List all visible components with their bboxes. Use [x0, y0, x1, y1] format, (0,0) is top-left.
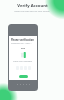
staticText: Check your messages	[13, 60, 33, 63]
button[interactable]	[19, 75, 28, 78]
staticText: Verify Account	[17, 3, 48, 9]
staticText: Code sent to +1 555 ...	[11, 42, 32, 45]
staticText: OTP	[21, 47, 25, 50]
staticText: Enter the code sent to your phone	[14, 10, 50, 13]
staticText: Phone verification	[11, 38, 34, 41]
